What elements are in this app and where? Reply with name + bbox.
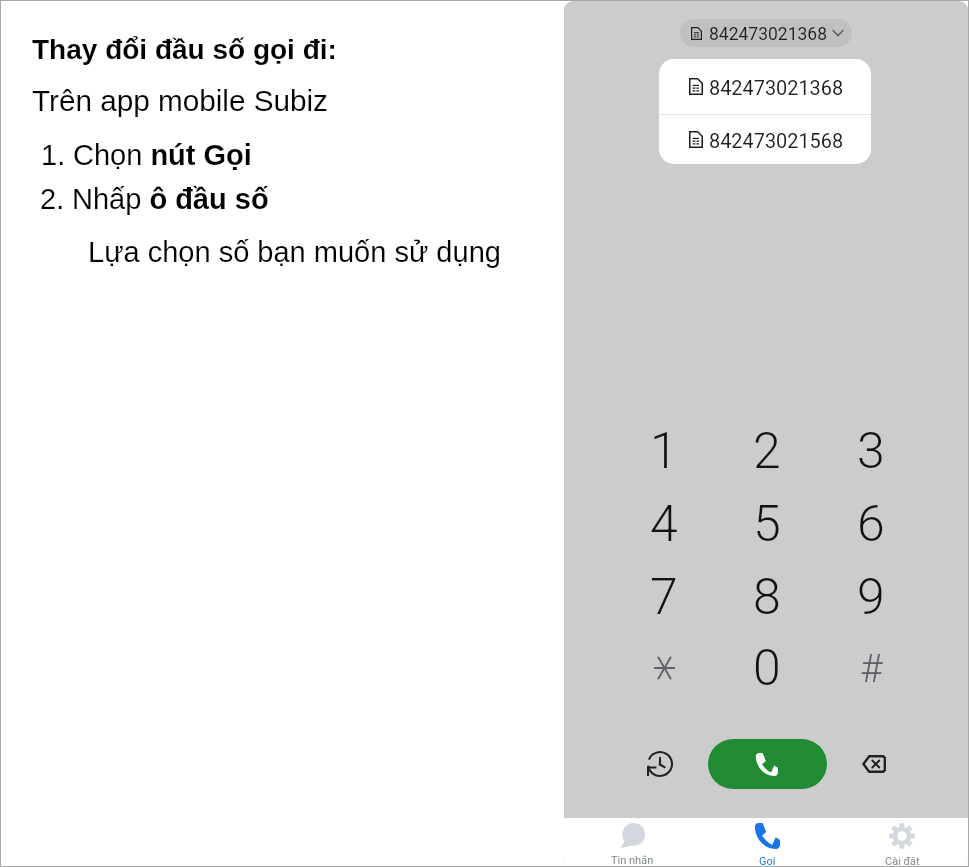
staticText: 2 xyxy=(753,422,781,481)
button[interactable]: Call xyxy=(708,739,827,789)
staticText: 0 xyxy=(753,639,781,698)
staticText: # xyxy=(860,646,883,692)
staticText: 5 xyxy=(753,495,781,554)
button[interactable]: 0 xyxy=(715,632,819,705)
button[interactable]: Tin nhắn xyxy=(565,818,699,866)
button[interactable]: 1 xyxy=(612,415,716,488)
button[interactable]: 2 xyxy=(715,415,819,488)
button[interactable]: 9 xyxy=(819,561,923,634)
staticText: Thay đổi đầu số gọi đi: xyxy=(32,34,337,65)
staticText: 9 xyxy=(857,568,885,627)
staticText: 4 xyxy=(650,495,678,554)
staticText: 6 xyxy=(857,495,885,554)
button[interactable]: 842473021568 xyxy=(659,115,871,164)
button[interactable]: Gọi xyxy=(700,818,834,866)
staticText: Cài đặt xyxy=(885,855,920,866)
button[interactable]: 5 xyxy=(715,488,819,561)
button[interactable]: 8 xyxy=(715,561,819,634)
staticText: Trên app mobile Subiz xyxy=(32,84,328,117)
staticText: Tin nhắn xyxy=(611,854,654,866)
button[interactable]: 842473021368 xyxy=(659,59,871,114)
staticText: Nhấp ô đầu số xyxy=(72,183,269,215)
staticText: 842473021368 xyxy=(709,24,828,45)
staticText: 8 xyxy=(753,568,781,627)
staticText: Lựa chọn số bạn muốn sử dụng xyxy=(88,236,501,268)
button[interactable]: Call history xyxy=(634,738,686,790)
staticText: 2. xyxy=(40,183,65,215)
staticText: Chọn nút Gọi xyxy=(73,139,252,171)
button[interactable]: 7 xyxy=(612,561,716,634)
button[interactable]: 6 xyxy=(819,488,923,561)
button[interactable]: Select outgoing number 842473021368 xyxy=(680,19,852,47)
staticText: 842473021568 xyxy=(709,130,844,153)
button[interactable]: 3 xyxy=(819,415,923,488)
button[interactable]: # xyxy=(819,632,923,705)
staticText: 1 xyxy=(650,422,678,481)
staticText: 3 xyxy=(857,422,885,481)
staticText: 842473021368 xyxy=(709,77,844,100)
button[interactable]: 4 xyxy=(612,488,716,561)
staticText: 1. xyxy=(41,139,66,171)
staticText: 7 xyxy=(650,568,678,627)
button[interactable]: Backspace xyxy=(848,738,900,790)
button[interactable] xyxy=(612,632,716,705)
staticText: Gọi xyxy=(759,855,776,866)
button[interactable]: Cài đặt xyxy=(835,818,968,866)
